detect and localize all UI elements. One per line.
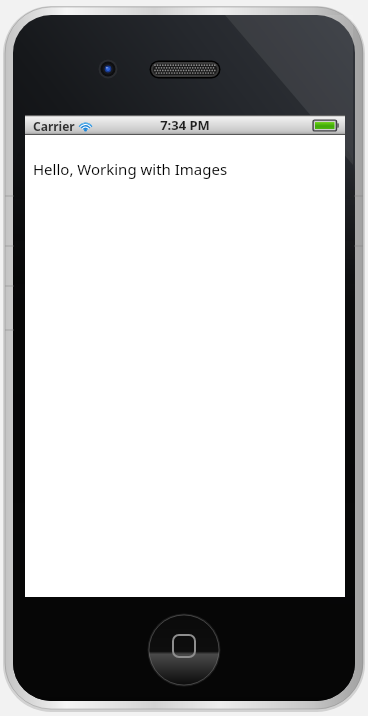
button[interactable]: Hello, Working with Images	[33, 159, 228, 179]
other: Wi-Fi signal	[77, 119, 94, 132]
staticText: 7:34 PM	[160, 116, 210, 134]
staticText: Carrier	[33, 118, 75, 134]
other: Battery full	[313, 120, 339, 131]
